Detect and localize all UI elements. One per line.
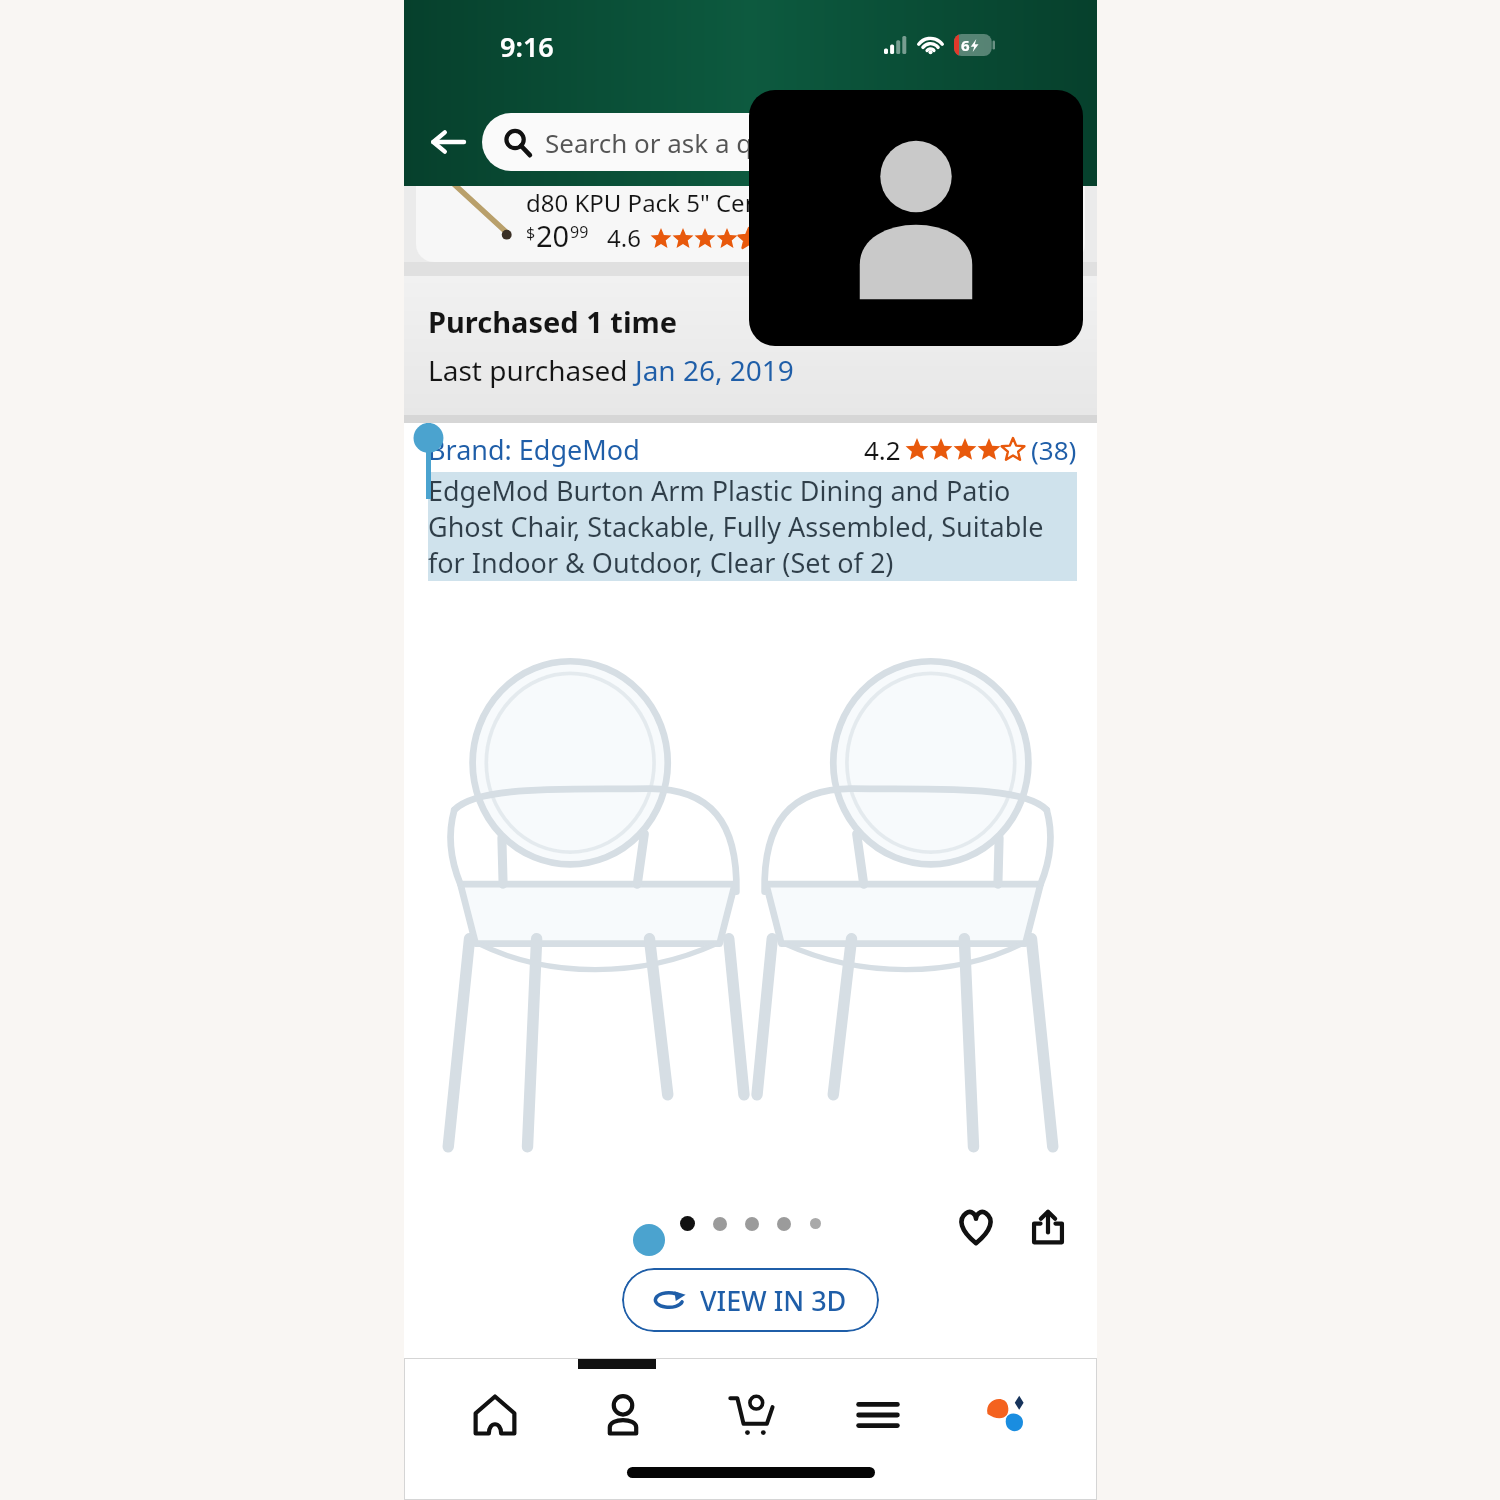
button[interactable]: Assistant	[969, 1378, 1043, 1452]
button[interactable]: Search or ask a question	[482, 113, 1082, 171]
button[interactable]: VIEW IN 3D	[622, 1268, 879, 1332]
staticText: (38)	[1031, 432, 1077, 467]
button[interactable]: Home	[458, 1378, 532, 1452]
staticText: Last purchased	[428, 351, 635, 389]
staticText: 20	[536, 216, 570, 255]
button[interactable]: Share	[1017, 1196, 1079, 1258]
button[interactable]: Back	[418, 112, 478, 172]
staticText: 9:16	[500, 28, 554, 65]
staticText: Purchased 1 time	[428, 302, 678, 341]
staticText: 6	[961, 35, 970, 55]
button[interactable]: Add to favorites	[945, 1196, 1007, 1258]
button[interactable]: Account	[586, 1378, 660, 1452]
button[interactable]: Profile preview	[749, 90, 1083, 346]
staticText: 4.6	[607, 221, 641, 254]
button[interactable]: d80 KPU Pack 5" Center to	[416, 186, 1085, 262]
staticText: 4.2	[864, 432, 901, 467]
button[interactable]: Menu	[841, 1378, 915, 1452]
button[interactable]: Cart	[714, 1378, 788, 1452]
staticText: 99	[570, 221, 589, 243]
button[interactable]: Brand: EdgeMod	[428, 431, 640, 468]
staticText: $	[526, 222, 536, 244]
staticText: Search or ask a question	[545, 125, 844, 160]
button[interactable]: Jan 26, 2019	[635, 351, 794, 389]
staticText: VIEW IN 3D	[700, 1282, 847, 1319]
staticText: EdgeMod Burton Arm Plastic Dining and Pa…	[428, 472, 1077, 581]
staticText: d80 KPU Pack 5" Center to	[526, 186, 822, 219]
